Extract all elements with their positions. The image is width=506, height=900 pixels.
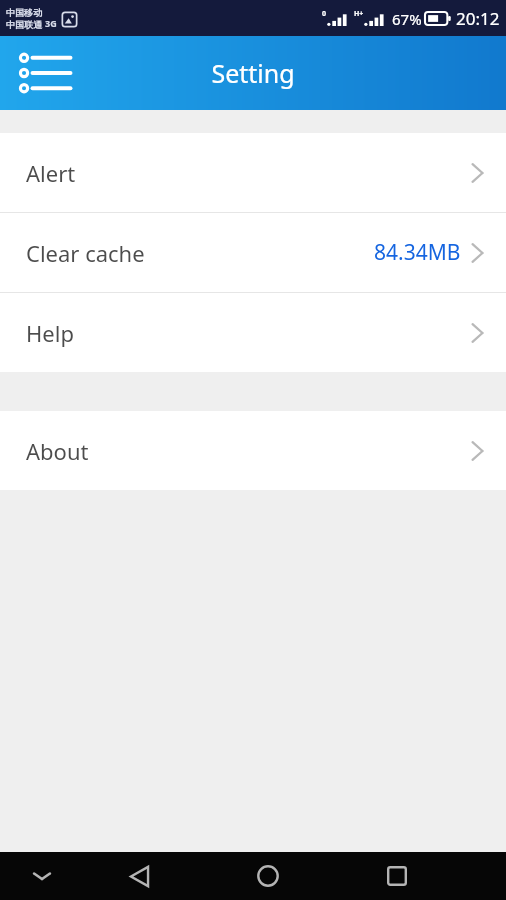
button[interactable]: About xyxy=(0,411,506,490)
staticText: Help xyxy=(26,318,74,348)
staticText: 中国移动 xyxy=(6,7,42,18)
staticText: H+ xyxy=(354,9,364,19)
staticText: 0 xyxy=(322,9,327,19)
staticText: 中国联通 xyxy=(6,19,42,30)
button[interactable]: Menu xyxy=(14,42,76,104)
button[interactable]: Home xyxy=(244,852,292,900)
staticText: 3G xyxy=(45,17,57,29)
staticText: 67% xyxy=(392,9,422,29)
button[interactable]: Back xyxy=(115,852,163,900)
button[interactable]: Recents xyxy=(373,852,421,900)
button[interactable]: Clear cache xyxy=(0,213,506,292)
staticText: Alert xyxy=(26,158,76,188)
staticText: Setting xyxy=(211,56,295,90)
staticText: Clear cache xyxy=(26,238,145,268)
button[interactable]: Hide xyxy=(18,852,66,900)
button[interactable]: Alert xyxy=(0,133,506,212)
button[interactable]: Help xyxy=(0,293,506,372)
staticText: About xyxy=(26,436,89,466)
staticText: 20:12 xyxy=(456,7,500,30)
staticText: 84.34MB xyxy=(374,238,461,267)
